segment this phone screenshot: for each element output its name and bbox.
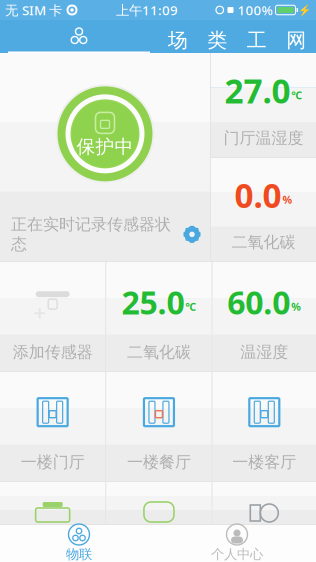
staticText: 上午11:09 [116,1,178,19]
staticText: ⚡ [298,4,311,16]
button[interactable]: 灯 [213,482,316,524]
button[interactable]: 一楼餐厅 [106,372,212,481]
button[interactable]: 一楼客厅 [213,372,316,481]
staticText: 100% [237,1,272,19]
button[interactable]: 保护中 [0,53,210,261]
staticText: % [282,193,292,207]
button[interactable]: 添加传感器 [0,262,105,371]
button[interactable]: 个人中心 [158,524,316,562]
staticText: 个人中心 [211,546,263,562]
button[interactable]: 保护中 [55,84,155,184]
button[interactable]: 27.0 [211,53,316,157]
staticText: 二氧化碳 [127,342,191,362]
staticText: 网关 [286,28,306,77]
staticText: ℃ [291,88,302,102]
staticText: % [291,300,301,314]
staticText: 一楼客厅 [232,452,296,472]
staticText: 添加传感器 [13,342,93,362]
button[interactable]: 物联 [0,524,158,562]
button[interactable]: 灯 [0,482,105,524]
staticText: 门厅温湿度 [223,128,303,148]
staticText: 一楼餐厅 [127,452,191,472]
button[interactable]: 类型 [197,20,237,53]
button[interactable]: 场景 [158,20,197,53]
staticText: 物联 [66,546,92,562]
staticText: 一楼门厅 [21,452,85,472]
button[interactable]: 25.0 [106,262,212,371]
staticText: 工作区 [247,28,267,102]
staticText: 温湿度 [240,342,288,362]
button[interactable]: 灯 [106,482,212,524]
staticText: 类型 [207,28,227,77]
staticText: 0.0 [234,173,281,217]
staticText: 保护中 [76,135,133,158]
button[interactable]: 一楼门厅 [0,372,105,481]
staticText: 60.0 [227,281,290,323]
staticText: ℃ [185,300,196,314]
staticText: 场景 [168,28,188,77]
button[interactable]: 总览 [0,20,158,53]
button[interactable]: 工作区 [237,20,276,53]
button[interactable]: 网关 [276,20,316,53]
staticText: 25.0 [121,281,184,323]
staticText: 27.0 [224,68,290,113]
button[interactable]: 0.0 [211,158,316,261]
staticText: 正在实时记录传感器状态 [11,215,171,254]
staticText: 无 SIM 卡 [5,1,62,19]
staticText: 二氧化碳 [231,232,295,252]
button[interactable]: 60.0 [213,262,316,371]
